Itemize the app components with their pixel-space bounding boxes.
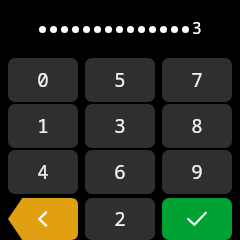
staticText: 8 xyxy=(191,113,203,139)
staticText: 3 xyxy=(192,17,202,39)
staticText: 9 xyxy=(191,159,203,185)
staticText: 7 xyxy=(191,67,203,93)
button[interactable]: 2 xyxy=(85,198,155,240)
button[interactable]: 0 xyxy=(8,58,78,102)
button[interactable]: 6 xyxy=(85,150,155,194)
button[interactable]: 1 xyxy=(8,104,78,148)
button[interactable]: 9 xyxy=(162,150,232,194)
staticText: 5 xyxy=(114,67,126,93)
button[interactable]: 7 xyxy=(162,58,232,102)
button[interactable]: 4 xyxy=(8,150,78,194)
staticText: 1 xyxy=(37,113,49,139)
staticText: 6 xyxy=(114,159,126,185)
staticText: 2 xyxy=(114,206,126,232)
staticText: 0 xyxy=(37,67,49,93)
staticText: 3 xyxy=(114,113,126,139)
button[interactable]: Backspace xyxy=(8,198,78,240)
button[interactable]: 5 xyxy=(85,58,155,102)
button[interactable]: 3 xyxy=(85,104,155,148)
button[interactable]: 8 xyxy=(162,104,232,148)
staticText: 4 xyxy=(37,159,49,185)
button[interactable]: Confirm xyxy=(162,198,232,240)
